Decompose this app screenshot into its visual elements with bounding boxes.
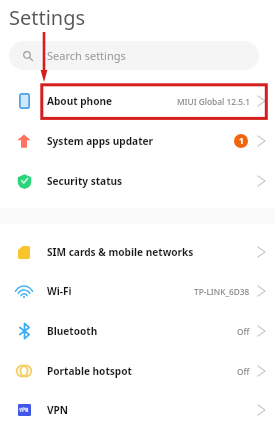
button[interactable]: About phone — [0, 81, 274, 121]
staticText: TP-LINK_6D38 — [194, 286, 250, 297]
staticText: SIM cards & mobile networks — [47, 245, 194, 259]
staticText: 1 — [239, 135, 244, 147]
other: Open Security status — [256, 175, 268, 187]
other: Open System apps updater — [256, 135, 268, 147]
staticText: MIUI Global 12.5.1 — [177, 96, 250, 107]
staticText: Off — [237, 326, 250, 337]
staticText: Search settings — [47, 48, 126, 63]
button[interactable]: Security status — [0, 161, 274, 201]
button[interactable]: SIM cards & mobile networks — [0, 232, 274, 272]
other: Open Wi-Fi — [256, 285, 268, 297]
button[interactable]: Search settings — [9, 41, 259, 70]
staticText: System apps updater — [47, 134, 154, 148]
staticText: About phone — [47, 94, 113, 108]
staticText: Bluetooth — [47, 324, 98, 338]
other: Open Portable hotspot — [256, 365, 268, 377]
other: Open About phone — [256, 95, 268, 107]
button[interactable]: VPN — [0, 390, 274, 425]
staticText: Settings — [9, 4, 86, 31]
button[interactable]: System apps updater — [0, 121, 274, 161]
button[interactable]: Bluetooth — [0, 311, 274, 351]
other: Open Bluetooth — [256, 325, 268, 337]
other: Open VPN — [256, 404, 268, 416]
staticText: Off — [237, 366, 250, 377]
button[interactable]: Wi-Fi — [0, 271, 274, 311]
staticText: Wi-Fi — [47, 284, 72, 298]
staticText: VPN — [47, 403, 69, 417]
staticText: Security status — [47, 174, 123, 188]
staticText: Portable hotspot — [47, 364, 132, 378]
button[interactable]: Portable hotspot — [0, 351, 274, 391]
other: Open SIM cards & mobile networks — [256, 246, 268, 258]
